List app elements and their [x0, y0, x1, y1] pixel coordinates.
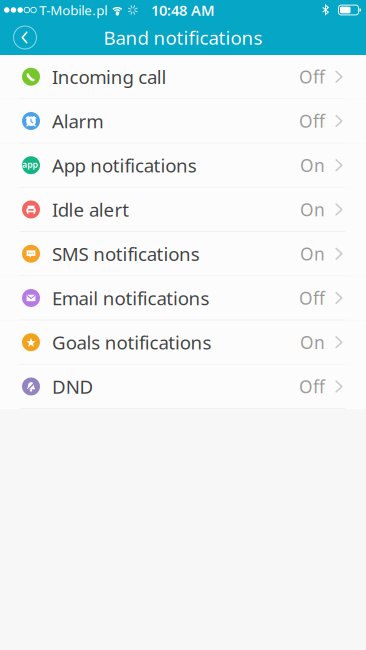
- staticText: On: [300, 242, 325, 265]
- button[interactable]: Incoming call: [0, 55, 366, 98]
- staticText: Idle alert: [52, 197, 129, 222]
- button[interactable]: Email notifications: [0, 276, 366, 320]
- staticText: On: [300, 331, 325, 354]
- staticText: App notifications: [52, 153, 197, 178]
- button[interactable]: Goals notifications: [0, 320, 366, 364]
- staticText: 10:48 AM: [151, 0, 215, 20]
- staticText: Off: [299, 286, 325, 309]
- button[interactable]: Idle alert: [0, 188, 366, 231]
- button[interactable]: Alarm: [0, 99, 366, 143]
- button[interactable]: SMS notifications: [0, 232, 366, 275]
- staticText: Goals notifications: [52, 330, 211, 355]
- staticText: DND: [52, 374, 94, 399]
- staticText: Alarm: [52, 109, 103, 133]
- staticText: Off: [299, 375, 325, 398]
- staticText: On: [300, 198, 325, 221]
- staticText: Band notifications: [103, 25, 262, 50]
- staticText: Incoming call: [52, 64, 167, 89]
- button[interactable]: DND: [0, 365, 366, 408]
- staticText: Off: [299, 65, 325, 88]
- staticText: Email notifications: [52, 286, 209, 310]
- staticText: Off: [299, 109, 325, 132]
- staticText: T-Mobile.pl: [39, 1, 107, 19]
- staticText: app: [18, 156, 42, 173]
- staticText: On: [300, 154, 325, 177]
- staticText: SMS notifications: [52, 241, 200, 266]
- button[interactable]: app: [0, 143, 366, 187]
- button[interactable]: Back: [8, 20, 42, 55]
